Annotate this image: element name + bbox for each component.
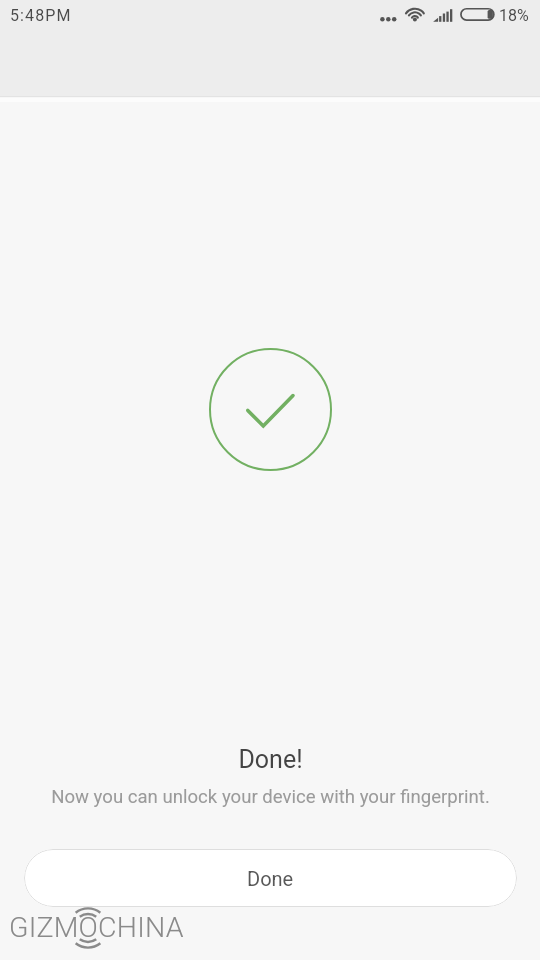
staticText: GIZMOCHINA — [9, 911, 184, 944]
other: Fingerprint enrolled successfully — [209, 348, 332, 471]
staticText: Now you can unlock your device with your… — [51, 786, 490, 808]
staticText: Done! — [238, 745, 303, 774]
staticText: Done — [247, 867, 294, 890]
other: Wi-Fi, mobile signal and battery status — [376, 0, 500, 32]
staticText: 18% — [499, 6, 529, 25]
button[interactable]: Done — [24, 849, 517, 907]
staticText: 5:48PM — [10, 6, 72, 25]
